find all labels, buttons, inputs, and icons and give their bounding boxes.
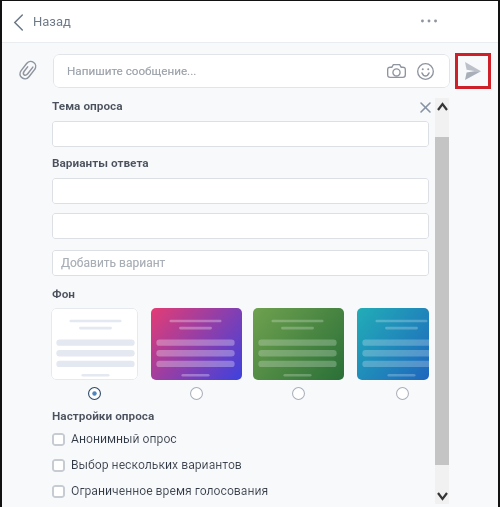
button[interactable] bbox=[52, 121, 429, 147]
button[interactable]: Camera bbox=[383, 58, 409, 84]
button[interactable]: Напишите сообщение... bbox=[53, 54, 450, 88]
staticText: Фон bbox=[52, 287, 76, 301]
button[interactable] bbox=[52, 213, 429, 239]
button[interactable]: Background style 2 bbox=[185, 382, 207, 404]
button[interactable]: More options bbox=[414, 6, 444, 36]
button[interactable]: Background style 3 bbox=[287, 382, 309, 404]
staticText: Варианты ответа bbox=[52, 156, 149, 170]
staticText: Тема опроса bbox=[52, 99, 123, 113]
button[interactable]: Close poll editor bbox=[414, 96, 436, 118]
button[interactable] bbox=[253, 308, 344, 380]
button[interactable]: Background style 1 bbox=[83, 382, 105, 404]
staticText: Назад bbox=[33, 14, 71, 29]
button[interactable]: Выбор нескольких вариантов bbox=[52, 458, 362, 472]
button[interactable]: Анонимный опрос bbox=[52, 432, 362, 446]
button[interactable]: Ограниченное время голосования bbox=[52, 484, 362, 498]
button[interactable] bbox=[357, 308, 429, 380]
button[interactable]: Attach file bbox=[12, 55, 42, 85]
staticText: Выбор нескольких вариантов bbox=[71, 458, 242, 472]
button[interactable] bbox=[51, 308, 138, 380]
button[interactable] bbox=[52, 178, 429, 204]
staticText: Добавить вариант bbox=[61, 256, 166, 270]
button[interactable]: Scroll down bbox=[435, 487, 449, 505]
staticText: Ограниченное время голосования bbox=[71, 484, 269, 498]
staticText: Анонимный опрос bbox=[71, 432, 177, 446]
button[interactable]: Scroll up bbox=[435, 98, 449, 116]
button[interactable]: Добавить вариант bbox=[52, 250, 429, 276]
button[interactable]: Emoji bbox=[412, 58, 438, 84]
button[interactable] bbox=[151, 308, 242, 380]
button[interactable]: Background style 4 bbox=[391, 382, 413, 404]
button[interactable]: Send bbox=[455, 53, 491, 89]
staticText: Напишите сообщение... bbox=[67, 64, 197, 78]
staticText: Настройки опроса bbox=[52, 409, 155, 423]
button[interactable]: Назад bbox=[8, 5, 75, 39]
